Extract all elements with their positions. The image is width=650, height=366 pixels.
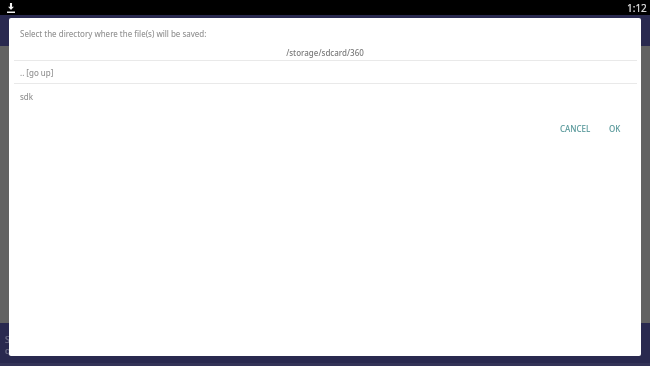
button[interactable]: OK (604, 119, 626, 138)
other: Download (7, 3, 15, 13)
staticText: CANCEL (560, 123, 591, 134)
button[interactable]: CANCEL (555, 119, 596, 138)
staticText: 1:12 (627, 1, 647, 15)
staticText: Select the directory where the file(s) w… (20, 28, 207, 39)
button[interactable]: .. [go up] (9, 60, 641, 84)
staticText: good (5, 344, 17, 355)
staticText: OK (609, 123, 621, 134)
staticText: sdk (20, 91, 34, 102)
staticText: .. [go up] (20, 67, 54, 78)
button[interactable]: sdk (9, 84, 641, 108)
staticText: Size of the cached data (5, 333, 17, 345)
staticText: /storage/sdcard/360 (9, 47, 641, 58)
